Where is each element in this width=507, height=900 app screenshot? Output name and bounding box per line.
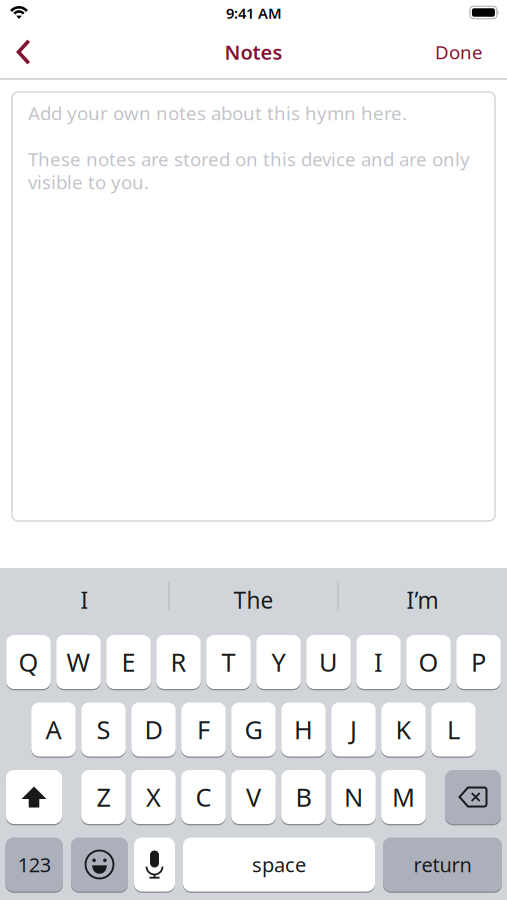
staticText: O — [418, 645, 438, 679]
button[interactable]: E — [106, 635, 151, 689]
staticText: space — [252, 851, 306, 878]
button[interactable]: R — [156, 635, 201, 689]
staticText: Done — [435, 40, 483, 64]
staticText: G — [244, 713, 262, 746]
button[interactable]: J — [331, 702, 376, 756]
button[interactable]: Shift — [6, 770, 62, 824]
staticText: 9:41 AM — [226, 3, 282, 23]
staticText: X — [146, 780, 161, 814]
button[interactable]: Emoji — [71, 837, 128, 891]
staticText: A — [45, 713, 61, 746]
staticText: T — [221, 645, 235, 679]
staticText: N — [344, 780, 363, 814]
button[interactable]: I — [356, 635, 401, 689]
staticText: 123 — [18, 851, 51, 878]
staticText: M — [392, 780, 415, 814]
staticText: Q — [18, 645, 38, 679]
staticText: F — [197, 713, 210, 746]
staticText: Y — [271, 645, 285, 679]
staticText: H — [294, 713, 313, 746]
staticText: U — [319, 645, 338, 679]
staticText: W — [66, 645, 90, 679]
button[interactable]: D — [131, 702, 176, 756]
button[interactable]: The — [169, 572, 337, 628]
staticText: I — [374, 645, 383, 679]
staticText: visible to you. — [28, 170, 149, 194]
button[interactable]: I — [0, 572, 168, 628]
staticText: B — [295, 780, 311, 814]
button[interactable]: O — [406, 635, 451, 689]
staticText: C — [195, 780, 211, 814]
staticText: These notes are stored on this device an… — [28, 147, 470, 171]
button[interactable]: Delete — [445, 770, 501, 824]
button[interactable]: B — [281, 770, 326, 824]
button[interactable]: F — [181, 702, 226, 756]
button[interactable]: X — [131, 770, 176, 824]
button[interactable]: Numbers — [5, 837, 63, 891]
button[interactable]: V — [231, 770, 276, 824]
button[interactable]: U — [306, 635, 351, 689]
button[interactable]: T — [206, 635, 251, 689]
button[interactable]: H — [281, 702, 326, 756]
button[interactable]: G — [231, 702, 276, 756]
button[interactable]: W — [56, 635, 101, 689]
staticText: L — [447, 713, 460, 746]
staticText: E — [121, 645, 135, 679]
staticText: Notes — [224, 39, 282, 65]
button[interactable]: Done — [435, 40, 483, 64]
staticText: J — [350, 713, 357, 746]
button[interactable]: return — [383, 837, 502, 891]
staticText: The — [233, 585, 273, 615]
button[interactable]: N — [331, 770, 376, 824]
staticText: return — [413, 851, 471, 878]
button[interactable]: I’m — [338, 572, 506, 628]
staticText: Z — [96, 780, 110, 814]
staticText: I — [80, 585, 88, 615]
button[interactable]: Back — [7, 35, 41, 69]
button[interactable]: Q — [6, 635, 51, 689]
button[interactable]: S — [81, 702, 126, 756]
staticText: I’m — [406, 585, 438, 615]
staticText: D — [144, 713, 162, 746]
staticText: P — [471, 645, 486, 679]
button[interactable]: M — [381, 770, 426, 824]
staticText: S — [96, 713, 110, 746]
button[interactable]: A — [31, 702, 76, 756]
staticText: V — [246, 780, 261, 814]
button[interactable]: P — [456, 635, 501, 689]
staticText: R — [170, 645, 186, 679]
button[interactable]: C — [181, 770, 226, 824]
button[interactable]: L — [431, 702, 476, 756]
button[interactable]: Dictate — [134, 837, 175, 891]
button[interactable]: Y — [256, 635, 301, 689]
button[interactable]: Z — [81, 770, 126, 824]
button[interactable]: K — [381, 702, 426, 756]
staticText: K — [395, 713, 411, 746]
staticText: Add your own notes about this hymn here. — [28, 101, 407, 125]
button[interactable]: space — [183, 837, 375, 891]
